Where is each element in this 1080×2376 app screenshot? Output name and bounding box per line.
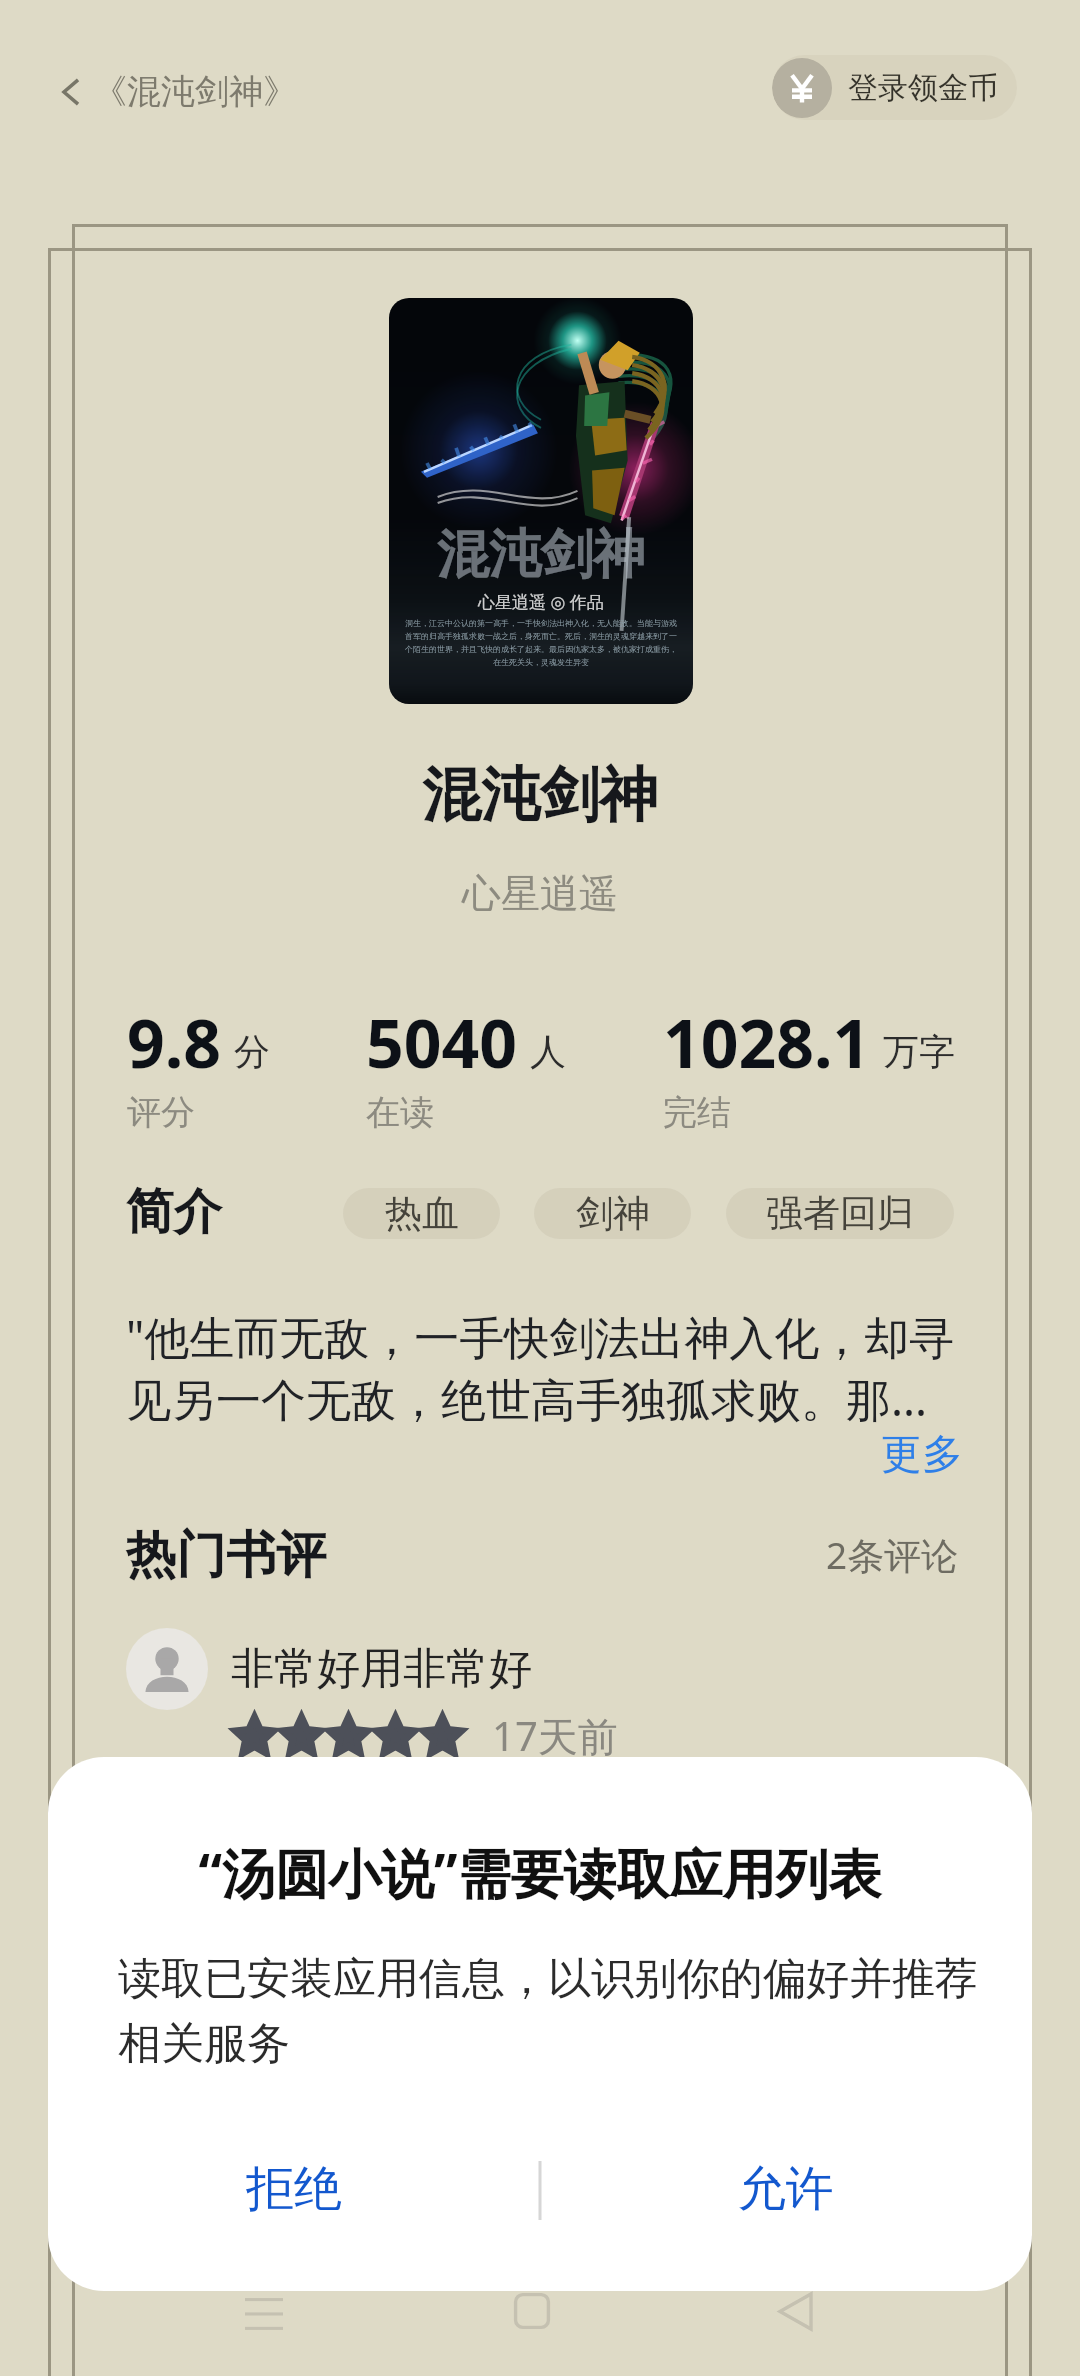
staticText: "他生而无敌，一手快剑法出神入化，却寻见另一个无敌，绝世高手独孤求败。那... xyxy=(126,1306,962,1429)
staticText: 更多 xyxy=(881,1429,963,1481)
staticText: 允许 xyxy=(738,2159,834,2219)
staticText: 非常好用非常好 xyxy=(231,1642,532,1696)
staticText: 《混沌剑神》 xyxy=(93,70,297,113)
staticText: 读取已安装应用信息，以识别你的偏好并推荐相关服务 xyxy=(118,1952,998,2071)
staticText: 简介 xyxy=(126,1182,222,1242)
staticText: 评分 xyxy=(127,1091,195,1134)
button[interactable]: Book cover xyxy=(389,298,693,704)
staticText: 9.8 xyxy=(127,997,222,1087)
staticText: 在读 xyxy=(366,1091,434,1134)
staticText: 1028.1 xyxy=(663,997,871,1087)
staticText: 登录领金币 xyxy=(848,69,998,107)
button[interactable]: 登录领金币 xyxy=(772,55,1017,120)
staticText: 强者回归 xyxy=(766,1190,914,1237)
button[interactable]: Back xyxy=(38,58,104,126)
button[interactable]: Back xyxy=(725,2276,865,2346)
staticText: 拒绝 xyxy=(246,2159,342,2219)
staticText: 热门书评 xyxy=(126,1524,326,1587)
staticText: 混沌剑神 xyxy=(437,522,645,588)
staticText: 万字 xyxy=(883,1029,955,1074)
button[interactable]: 热血 xyxy=(343,1188,500,1239)
button[interactable]: Review by 非常好用非常好 xyxy=(110,1612,970,1762)
staticText: 5040 xyxy=(366,997,518,1087)
staticText: 分 xyxy=(234,1029,270,1074)
button[interactable]: 更多 xyxy=(881,1429,963,1481)
staticText: 17天前 xyxy=(492,1708,618,1763)
button[interactable]: 强者回归 xyxy=(726,1188,954,1239)
staticText: “汤圆小说”需要读取应用列表 xyxy=(48,1836,1032,1908)
button[interactable]: 剑神 xyxy=(534,1188,691,1239)
staticText: 完结 xyxy=(663,1091,731,1134)
staticText: 2条评论 xyxy=(826,1529,959,1580)
staticText: 热血 xyxy=(385,1190,459,1237)
staticText: 心星逍遥 xyxy=(0,869,1080,918)
button[interactable]: 允许 xyxy=(540,2117,1032,2261)
staticText: 心星逍遥 ◎ 作品 xyxy=(478,590,604,613)
button[interactable]: Home xyxy=(462,2276,602,2346)
staticText: 洞生，江云中公认的第一高手，一手快剑法出神入化，无人能敌。当能与游戏首军的归高手… xyxy=(405,618,677,667)
staticText: 混沌剑神 xyxy=(0,758,1080,832)
button[interactable]: Recents xyxy=(194,2276,334,2346)
staticText: 剑神 xyxy=(576,1190,650,1237)
staticText: 人 xyxy=(530,1029,566,1074)
button[interactable]: 拒绝 xyxy=(48,2117,540,2261)
